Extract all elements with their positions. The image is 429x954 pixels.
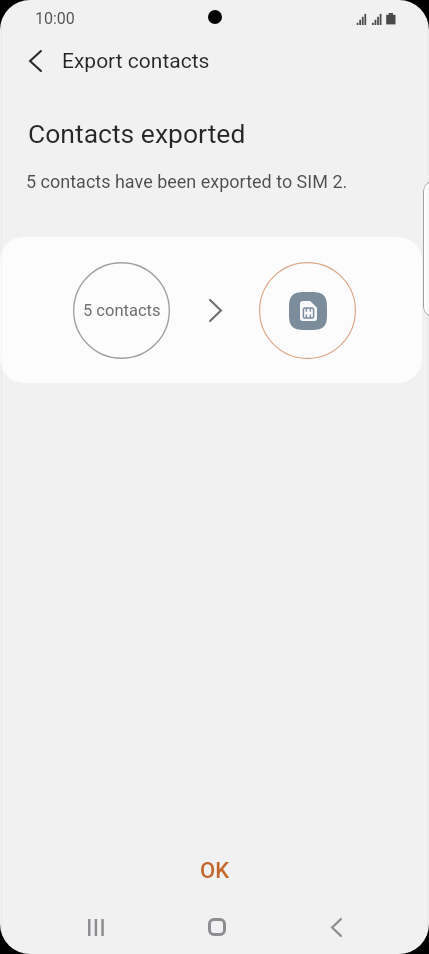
staticText: 5 contacts have been exported to SIM 2. bbox=[26, 171, 348, 192]
button[interactable]: 5 contacts bbox=[0, 237, 422, 383]
button[interactable]: Home bbox=[197, 907, 237, 947]
staticText: Export contacts bbox=[62, 49, 210, 74]
button[interactable]: Navigate up bbox=[16, 45, 58, 79]
button[interactable]: OK bbox=[175, 847, 255, 895]
button[interactable]: Back bbox=[318, 907, 358, 947]
staticText: 10:00 bbox=[35, 9, 75, 28]
button[interactable]: Recent apps bbox=[76, 907, 116, 947]
staticText: 5 contacts bbox=[83, 301, 161, 320]
staticText: Contacts exported bbox=[28, 118, 246, 149]
staticText: OK bbox=[200, 858, 230, 884]
